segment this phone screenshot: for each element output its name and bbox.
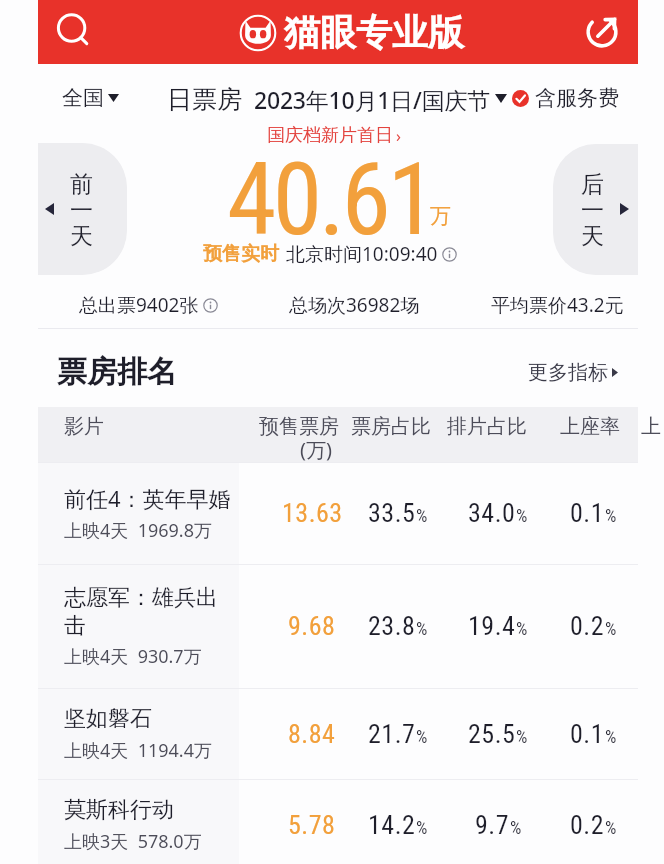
staticText: %: [605, 618, 617, 639]
staticText: %: [605, 505, 617, 526]
staticText: 0.2: [570, 611, 605, 641]
button[interactable]: 全国: [62, 85, 119, 111]
button[interactable]: 坚如磐石: [38, 688, 638, 779]
staticText: 40.61: [227, 141, 434, 237]
staticText: %: [605, 817, 617, 838]
staticText: 8.84: [288, 719, 336, 749]
staticText: 志愿军：雄兵出 击: [64, 584, 218, 639]
staticText: 后 一 天: [581, 170, 604, 251]
staticText: %: [516, 505, 528, 526]
staticText: %: [605, 726, 617, 747]
button[interactable]: 2023年10月1日/国庆节: [254, 84, 507, 112]
staticText: %: [416, 726, 428, 747]
staticText: 23.8: [368, 611, 416, 641]
staticText: 预售票房: [259, 414, 339, 439]
staticText: (万): [300, 436, 332, 463]
staticText: 更多指标: [528, 360, 608, 385]
staticText: 票房占比: [351, 414, 431, 439]
staticText: 33.5: [368, 498, 416, 528]
button[interactable]: 志愿军：雄兵出 击: [38, 564, 638, 688]
staticText: 总场次36982场: [289, 292, 420, 318]
staticText: 5.78: [288, 810, 336, 840]
button[interactable]: 更多指标: [528, 360, 618, 385]
staticText: 2023年10月1日/国庆节: [254, 84, 491, 112]
staticText: 14.2: [368, 810, 416, 840]
button[interactable]: 前 一 天: [38, 143, 127, 275]
staticText: %: [516, 618, 528, 639]
staticText: 预售实时: [203, 242, 279, 266]
button[interactable]: 含服务费: [512, 85, 619, 111]
staticText: 总出票9402张: [79, 292, 199, 318]
staticText: 9.68: [288, 611, 336, 641]
staticText: 上座率: [560, 414, 620, 439]
button[interactable]: Share: [578, 8, 626, 56]
staticText: 坚如磐石: [64, 705, 152, 733]
staticText: %: [516, 726, 528, 747]
staticText: 票房排名: [57, 353, 177, 391]
staticText: 上映4天 930.7万: [64, 644, 202, 669]
staticText: 25.5: [468, 719, 516, 749]
staticText: 13.63: [282, 498, 343, 528]
staticText: 含服务费: [535, 85, 619, 111]
button[interactable]: 后 一 天: [553, 144, 638, 275]
staticText: 北京时间10:09:40: [286, 241, 438, 267]
staticText: 影片: [64, 414, 104, 439]
button[interactable]: 前任4：英年早婚: [38, 462, 638, 564]
staticText: %: [510, 817, 522, 838]
staticText: 日票房: [167, 84, 242, 112]
staticText: %: [416, 817, 428, 838]
staticText: 莫斯科行动: [64, 796, 174, 824]
staticText: 上映4天 1194.4万: [64, 738, 212, 763]
staticText: 上映4天 1969.8万: [64, 518, 212, 543]
button[interactable]: 国庆档新片首日: [267, 124, 401, 147]
staticText: 上映3天 578.0万: [64, 829, 202, 854]
button[interactable]: Search: [50, 8, 98, 56]
staticText: 9.7: [475, 810, 510, 840]
staticText: 猫眼专业版: [284, 10, 464, 55]
staticText: 上: [641, 414, 661, 439]
staticText: %: [416, 505, 428, 526]
staticText: 21.7: [368, 719, 416, 749]
staticText: 0.2: [570, 810, 605, 840]
staticText: 0.1: [570, 719, 605, 749]
staticText: %: [416, 618, 428, 639]
staticText: 0.1: [570, 498, 605, 528]
staticText: ›: [396, 125, 401, 147]
staticText: 平均票价43.2元: [491, 292, 624, 318]
staticText: 34.0: [468, 498, 516, 528]
staticText: 全国: [62, 85, 104, 111]
staticText: 万: [430, 203, 451, 229]
staticText: 国庆档新片首日: [267, 124, 393, 147]
staticText: 排片占比: [447, 414, 527, 439]
button[interactable]: 莫斯科行动: [38, 779, 638, 864]
staticText: 前任4：英年早婚: [64, 483, 231, 513]
staticText: 前 一 天: [70, 170, 93, 251]
staticText: 19.4: [468, 611, 516, 641]
